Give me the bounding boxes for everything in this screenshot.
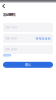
staticText: 请输入验证码 <box>5 37 17 40</box>
button[interactable]: 确认 <box>3 62 53 68</box>
staticText: 请输入手机号 <box>5 26 17 29</box>
staticText: 忘记密码 <box>3 12 15 17</box>
staticText: 确认 <box>25 63 31 67</box>
staticText: 请输入新密码 <box>5 48 17 51</box>
button[interactable]: 获取验证码 <box>36 37 51 40</box>
button[interactable]: 返回登录 <box>3 54 11 57</box>
button[interactable]: Back <box>0 3 7 9</box>
staticText: 返回登录 <box>3 54 11 57</box>
staticText: 获取验证码 <box>36 37 51 40</box>
